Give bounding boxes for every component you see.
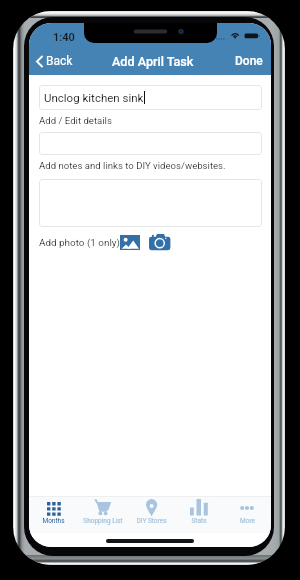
staticText: DIY Stores: [136, 517, 167, 525]
staticText: Done: [235, 54, 263, 68]
button[interactable]: Months: [29, 497, 78, 525]
staticText: Add April Task: [112, 54, 194, 69]
staticText: Months: [42, 517, 65, 525]
button[interactable]: Choose photo from gallery: [120, 235, 140, 250]
staticText: More: [240, 517, 255, 525]
staticText: Back: [46, 54, 73, 68]
button[interactable]: Stats: [175, 497, 223, 525]
staticText: 1:40: [53, 31, 75, 44]
button[interactable]: [39, 132, 262, 155]
staticText: Unclog kitchen sink: [44, 91, 144, 104]
staticText: Add notes and links to DIY videos/websit…: [39, 160, 226, 171]
button[interactable]: Shopping List: [78, 497, 127, 525]
button[interactable]: Back: [29, 47, 79, 75]
button[interactable]: [39, 179, 262, 227]
staticText: Add / Edit details: [39, 115, 112, 126]
button[interactable]: DIY Stores: [127, 497, 175, 525]
staticText: Add photo (1 only): [39, 237, 120, 249]
button[interactable]: Take photo with camera: [149, 234, 170, 250]
staticText: Shopping List: [83, 517, 123, 525]
button[interactable]: Unclog kitchen sink: [39, 85, 262, 110]
button[interactable]: Done: [227, 47, 271, 75]
button[interactable]: More: [223, 497, 271, 525]
staticText: Stats: [191, 517, 207, 525]
